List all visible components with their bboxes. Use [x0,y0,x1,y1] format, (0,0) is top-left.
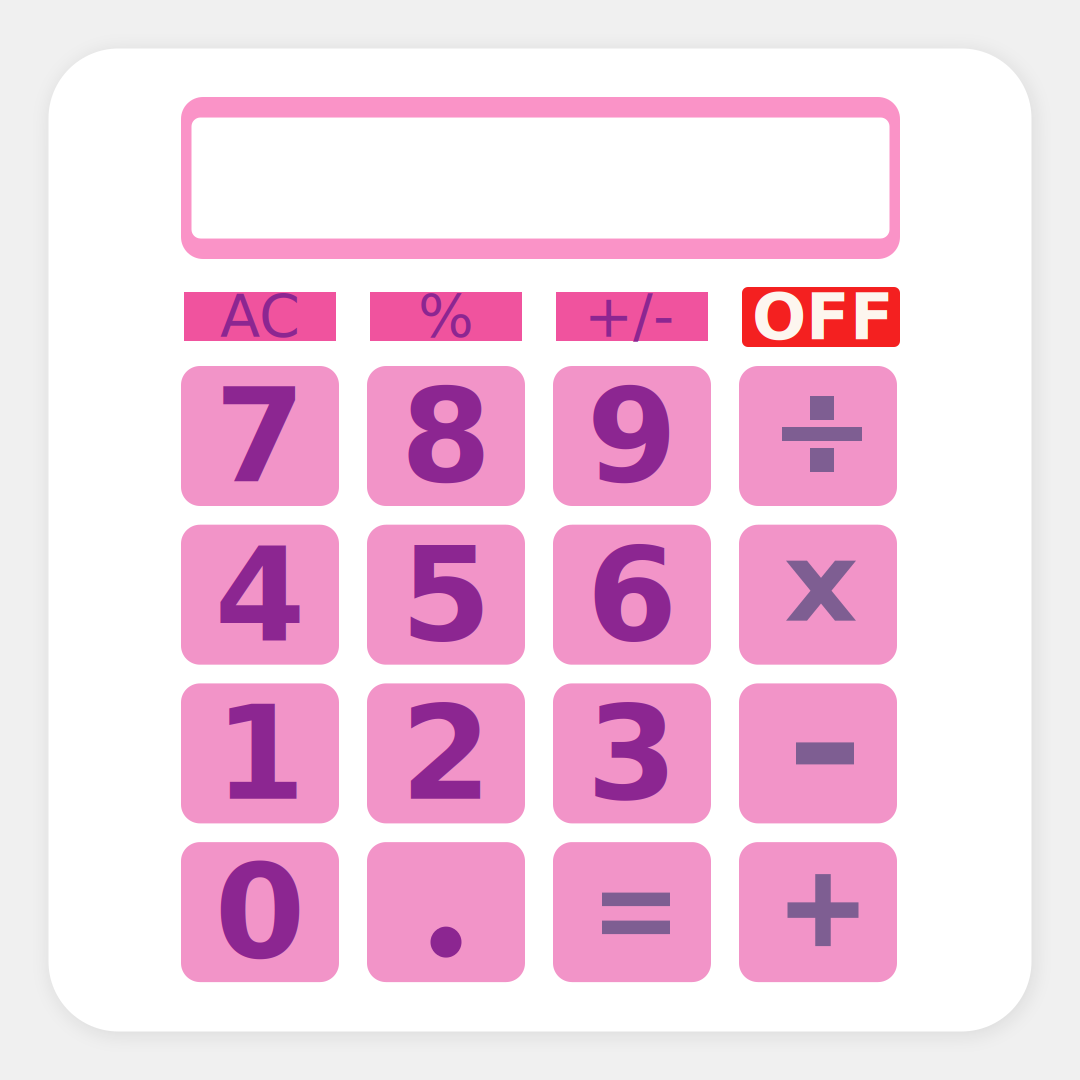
button[interactable]: 0 [181,842,339,982]
staticText: +/- [584,282,674,351]
button[interactable]: 6 [553,525,711,665]
staticText: 3 [586,677,677,829]
staticText: 4 [214,519,305,671]
button[interactable]: +/- [556,292,708,341]
button[interactable]: Plus [739,842,897,982]
staticText: 0 [214,836,305,988]
button[interactable]: Minus [739,683,897,823]
button[interactable]: Multiply [739,525,897,665]
button[interactable]: 5 [367,525,525,665]
button[interactable]: % [370,292,522,341]
button[interactable]: 9 [553,366,711,506]
button[interactable]: 1 [181,683,339,823]
staticText: 8 [400,360,491,512]
staticText: 1 [214,677,305,829]
button[interactable]: 7 [181,366,339,506]
staticText: % [418,282,474,351]
staticText: 7 [214,360,305,512]
staticText: 6 [586,519,677,671]
button[interactable]: 3 [553,683,711,823]
button[interactable]: AC [184,292,336,341]
staticText: OFF [752,280,894,354]
staticText: 2 [400,677,491,829]
staticText: AC [220,282,300,351]
staticText: 5 [400,519,491,671]
button[interactable]: OFF [742,287,900,347]
button[interactable]: 2 [367,683,525,823]
button[interactable]: Divide [739,366,897,506]
button[interactable]: 4 [181,525,339,665]
staticText: 9 [586,360,677,512]
button[interactable]: Equals [553,842,711,982]
button[interactable]: 8 [367,366,525,506]
button[interactable]: Decimal point [367,842,525,982]
